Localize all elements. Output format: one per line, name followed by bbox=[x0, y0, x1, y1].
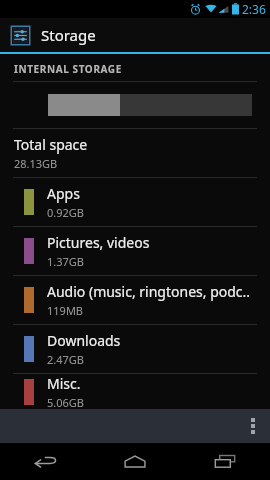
button[interactable]: Pictures, videos bbox=[0, 227, 270, 275]
staticText: Pictures, videos bbox=[47, 233, 150, 252]
staticText: 119MB bbox=[47, 303, 84, 318]
staticText: 28.13GB bbox=[14, 156, 58, 171]
button[interactable]: Misc. bbox=[0, 374, 270, 409]
staticText: 1.37GB bbox=[47, 254, 84, 269]
button[interactable]: Storage bbox=[0, 18, 270, 52]
button[interactable]: Apps bbox=[0, 178, 270, 226]
button[interactable]: Back bbox=[0, 443, 90, 480]
staticText: Apps bbox=[47, 184, 80, 203]
staticText: Audio (music, ringtones, podc.. bbox=[47, 282, 251, 301]
staticText: Downloads bbox=[47, 331, 121, 350]
button[interactable]: Home bbox=[90, 443, 180, 480]
staticText: INTERNAL STORAGE bbox=[14, 62, 122, 76]
staticText: 0.92GB bbox=[47, 205, 84, 220]
staticText: Storage bbox=[41, 25, 96, 45]
button[interactable]: Recent apps bbox=[180, 443, 270, 480]
button[interactable]: More options bbox=[236, 409, 270, 443]
button[interactable]: Audio (music, ringtones, podc.. bbox=[0, 276, 270, 324]
staticText: Total space bbox=[14, 135, 88, 154]
button[interactable]: Total space bbox=[0, 129, 270, 177]
staticText: Misc. bbox=[47, 374, 81, 393]
staticText: 2.47GB bbox=[47, 352, 84, 367]
staticText: 2:36 bbox=[242, 1, 266, 17]
button[interactable]: Downloads bbox=[0, 325, 270, 373]
staticText: 5.06GB bbox=[47, 395, 84, 409]
